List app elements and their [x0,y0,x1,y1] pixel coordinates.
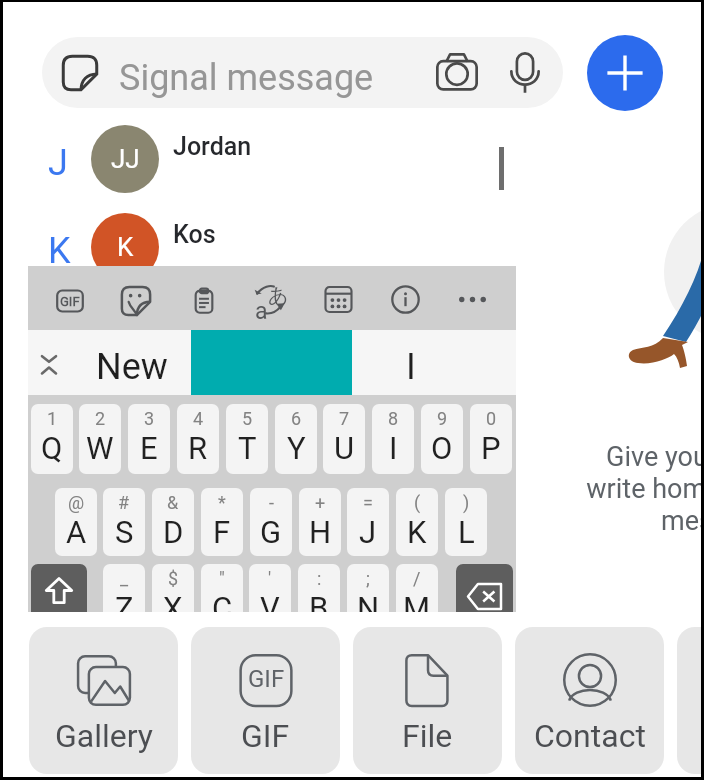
staticText: A [66,514,87,550]
staticText: / [413,568,421,589]
button[interactable]: ' [249,564,291,612]
button[interactable]: ) [445,488,487,556]
staticText: L [458,514,475,550]
staticText: * [218,492,226,513]
staticText: U [334,430,355,466]
button[interactable]: Info [391,285,420,314]
staticText: & [167,492,179,513]
staticText: V [260,590,280,612]
staticText: B [309,590,329,612]
button[interactable]: File [353,627,502,774]
staticText: S [115,514,134,550]
staticText: N [357,590,380,612]
staticText: J [359,514,377,550]
staticText: ' [268,568,272,589]
staticText: 0 [486,408,497,429]
button[interactable]: # [103,488,145,556]
staticText: New [96,346,168,388]
staticText: JJ [111,144,140,174]
button[interactable]: Sticker [42,37,563,108]
staticText: X [163,590,183,612]
button[interactable]: @ [55,488,97,556]
staticText: M [403,590,431,612]
button[interactable]: - [250,488,292,556]
button[interactable]: 2 [79,404,121,474]
button[interactable]: = [347,488,389,556]
button[interactable]: / [396,564,438,612]
button[interactable]: Stickers [120,285,152,317]
staticText: ) [463,492,470,513]
button[interactable]: Gallery [29,627,178,774]
button[interactable]: More options [458,285,487,314]
button[interactable]: Backspace [456,564,513,612]
staticText: = [363,492,373,513]
staticText: 4 [193,408,204,429]
button[interactable]: _ [103,564,145,612]
button[interactable]: * [201,488,243,556]
staticText: P [481,430,501,466]
button[interactable]: ; [347,564,389,612]
button[interactable]: J [30,115,470,203]
staticText: Z [115,590,134,612]
staticText: 8 [388,408,399,429]
staticText: K [407,514,427,550]
button[interactable]: New message [587,35,663,111]
staticText: 3 [144,408,155,429]
staticText: 7 [339,408,350,429]
staticText: + [315,492,326,513]
button[interactable]: 1 [31,404,73,474]
button[interactable]: Collapse suggestions [29,332,69,397]
button[interactable]: + [299,488,341,556]
staticText: 2 [95,408,106,429]
button[interactable]: 4 [177,404,219,474]
staticText: あ [268,283,289,308]
button[interactable]: GIF [56,287,84,315]
button[interactable]: : [298,564,340,612]
staticText: 9 [437,408,448,429]
button[interactable]: 3 [128,404,170,474]
button[interactable]: Translate [254,284,286,316]
staticText: GIF [248,665,285,693]
staticText: J [48,142,68,184]
button[interactable] [677,627,704,774]
button[interactable]: 6 [275,404,317,474]
staticText: ; [366,568,370,589]
staticText: D [163,514,184,550]
button[interactable]: K [30,203,470,291]
staticText: Signal message [119,57,374,99]
staticText: @ [68,492,85,513]
staticText: _ [120,568,129,589]
staticText: Gallery [55,717,153,755]
staticText: Jordan [173,132,252,161]
staticText: Give your people a write home about you … [516,441,704,537]
button[interactable]: Contact [515,627,664,774]
button[interactable]: Voice message [503,48,549,98]
staticText: ( [414,492,421,513]
staticText: I [389,430,398,466]
button[interactable]: GIF [191,627,340,774]
button[interactable]: Calendar [324,285,353,314]
button[interactable]: 0 [470,404,512,474]
button[interactable]: Shift [31,564,87,612]
staticText: 6 [291,408,302,429]
button[interactable]: " [201,564,243,612]
staticText: O [431,430,453,466]
button[interactable]: & [152,488,194,556]
staticText: Kos [173,220,216,249]
button[interactable]: ( [396,488,438,556]
button[interactable]: 8 [372,404,414,474]
button[interactable]: Camera [431,49,483,97]
staticText: K [117,232,134,262]
button[interactable]: 9 [421,404,463,474]
button[interactable]: $ [152,564,194,612]
staticText: GIF [241,717,290,755]
staticText: G [260,514,282,550]
staticText: K [48,230,71,272]
staticText: 1 [47,408,58,429]
button[interactable]: Sticker [53,46,107,100]
button[interactable]: 5 [226,404,268,474]
button[interactable]: Clipboard [191,287,217,315]
button[interactable]: 7 [323,404,365,474]
staticText: Q [41,430,63,466]
